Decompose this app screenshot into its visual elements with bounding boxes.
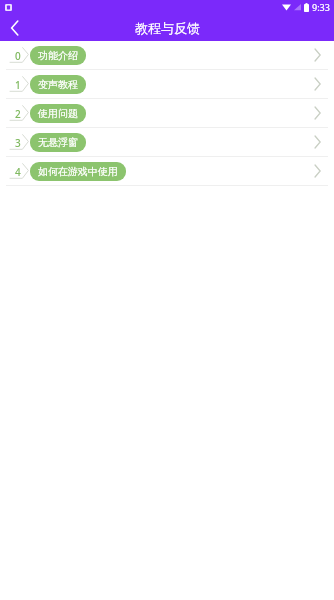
button[interactable]: 3: [0, 128, 334, 156]
button[interactable]: 2: [0, 99, 334, 127]
staticText: 1: [15, 78, 21, 92]
button[interactable]: 0: [0, 41, 334, 69]
staticText: 无悬浮窗: [38, 136, 78, 149]
staticText: 使用问题: [38, 107, 78, 120]
staticText: 功能介绍: [38, 49, 78, 62]
button[interactable]: Back: [0, 14, 30, 41]
staticText: 2: [15, 107, 21, 121]
staticText: 4: [15, 165, 21, 179]
button[interactable]: 1: [0, 70, 334, 98]
staticText: 教程与反馈: [135, 20, 200, 36]
staticText: 如何在游戏中使用: [38, 165, 118, 178]
staticText: 变声教程: [38, 78, 78, 91]
staticText: 3: [15, 136, 21, 150]
button[interactable]: 4: [0, 157, 334, 185]
staticText: 9:33: [312, 1, 330, 13]
staticText: 0: [15, 49, 21, 63]
